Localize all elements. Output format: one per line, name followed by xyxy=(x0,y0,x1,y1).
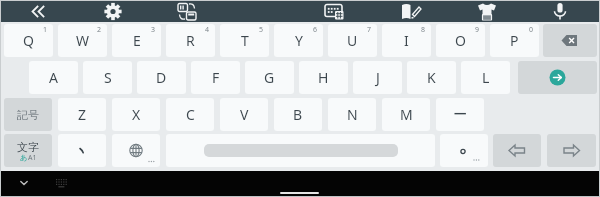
button[interactable] xyxy=(493,134,541,167)
button[interactable]: V xyxy=(220,98,268,131)
button[interactable]: O xyxy=(436,24,485,57)
staticText: C xyxy=(186,105,195,124)
staticText: H xyxy=(318,68,329,87)
button[interactable]: J xyxy=(353,61,402,94)
button[interactable] xyxy=(58,134,106,167)
staticText: 記号 xyxy=(17,108,39,122)
button[interactable]: D xyxy=(137,61,186,94)
staticText: V xyxy=(240,105,249,124)
button[interactable]: S xyxy=(83,61,132,94)
button[interactable]: A xyxy=(29,61,78,94)
button[interactable]: B xyxy=(274,98,322,131)
button[interactable] xyxy=(166,134,435,167)
button[interactable] xyxy=(173,0,201,22)
button[interactable] xyxy=(23,0,51,22)
staticText: U xyxy=(347,31,358,50)
button[interactable]: Y xyxy=(274,24,323,57)
button[interactable] xyxy=(473,0,501,22)
staticText: P xyxy=(510,31,519,50)
staticText: 文字 xyxy=(17,140,39,154)
staticText: Z xyxy=(78,105,87,124)
button[interactable] xyxy=(13,173,35,193)
staticText: 1 xyxy=(43,25,48,35)
button[interactable]: I xyxy=(382,24,431,57)
button[interactable]: L xyxy=(461,61,510,94)
staticText: 5 xyxy=(259,25,264,35)
staticText: N xyxy=(347,105,358,124)
button[interactable] xyxy=(546,0,574,22)
staticText: A xyxy=(49,68,58,87)
button[interactable]: N xyxy=(328,98,376,131)
button[interactable]: G xyxy=(245,61,294,94)
staticText: L xyxy=(482,68,490,87)
staticText: 8 xyxy=(421,25,426,35)
staticText: 4 xyxy=(205,25,210,35)
button[interactable]: ー xyxy=(436,98,484,131)
staticText: 7 xyxy=(367,25,372,35)
staticText: A1 xyxy=(28,153,37,163)
staticText: I xyxy=(404,31,409,50)
staticText: 3 xyxy=(151,25,156,35)
button[interactable]: Z xyxy=(58,98,106,131)
staticText: 6 xyxy=(313,25,318,35)
button[interactable] xyxy=(50,173,72,193)
staticText: K xyxy=(427,68,436,87)
button[interactable] xyxy=(547,134,596,167)
button[interactable] xyxy=(320,0,348,22)
staticText: O xyxy=(455,31,466,50)
staticText: B xyxy=(293,105,303,124)
button[interactable]: U xyxy=(328,24,377,57)
staticText: G xyxy=(264,68,275,87)
button[interactable] xyxy=(397,0,425,22)
button[interactable]: T xyxy=(220,24,269,57)
staticText: M xyxy=(400,105,413,124)
button[interactable] xyxy=(440,134,488,167)
button[interactable] xyxy=(99,0,127,22)
button[interactable]: E xyxy=(112,24,161,57)
button[interactable]: 文字 xyxy=(4,134,52,167)
button[interactable] xyxy=(518,61,597,94)
button[interactable]: C xyxy=(166,98,214,131)
button[interactable]: X xyxy=(112,98,160,131)
staticText: W xyxy=(76,31,90,50)
staticText: あ xyxy=(20,153,28,162)
staticText: X xyxy=(132,105,141,124)
staticText: R xyxy=(186,31,195,50)
staticText: 9 xyxy=(475,25,480,35)
button[interactable]: Q xyxy=(4,24,53,57)
button[interactable]: P xyxy=(490,24,539,57)
staticText: 2 xyxy=(97,25,102,35)
button[interactable] xyxy=(543,24,597,57)
staticText: F xyxy=(212,68,220,87)
button[interactable] xyxy=(112,134,160,167)
button[interactable]: F xyxy=(191,61,240,94)
staticText: E xyxy=(133,31,141,50)
staticText: T xyxy=(241,31,249,50)
staticText: Y xyxy=(295,31,303,50)
button[interactable]: R xyxy=(166,24,215,57)
button[interactable]: W xyxy=(58,24,107,57)
staticText: 0 xyxy=(529,25,534,35)
staticText: D xyxy=(156,68,167,87)
staticText: Q xyxy=(23,31,34,50)
button[interactable]: M xyxy=(382,98,430,131)
staticText: S xyxy=(104,68,112,87)
button[interactable]: H xyxy=(299,61,348,94)
button[interactable]: K xyxy=(407,61,456,94)
staticText: J xyxy=(376,68,380,87)
button[interactable]: 記号 xyxy=(4,98,52,131)
staticText: ー xyxy=(453,106,467,124)
